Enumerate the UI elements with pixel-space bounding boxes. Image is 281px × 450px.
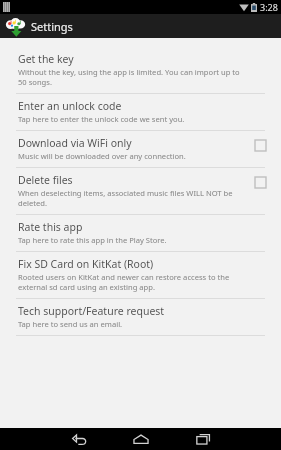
staticText: Tap here to enter the unlock code we sen… [18,114,185,124]
staticText: Rate this app [18,220,83,234]
staticText: Music will be downloaded over any connec… [18,151,186,161]
button[interactable]: Download via WiFi only [0,131,281,167]
staticText: Tap here to send us an email. [18,319,123,329]
button[interactable]: Home [110,428,172,450]
button[interactable]: Enter an unlock code [0,94,281,130]
button[interactable]: Get the key [0,47,281,93]
button[interactable]: Tech support/Feature request [0,299,281,335]
button[interactable]: Toggle Download via WiFi only [254,139,267,152]
button[interactable]: Toggle Delete files [254,176,267,189]
staticText: Without the key, using the app is limite… [18,67,246,87]
staticText: When deselecting items, associated music… [18,188,246,208]
staticText: Settings [31,19,73,34]
button[interactable]: Back [48,428,110,450]
staticText: Fix SD Card on KitKat (Root) [18,257,154,271]
button[interactable]: Delete files [0,168,281,214]
staticText: Delete files [18,173,73,187]
staticText: Enter an unlock code [18,99,122,113]
button[interactable]: Rate this app [0,215,281,251]
button[interactable]: Recent apps [172,428,234,450]
staticText: Get the key [18,52,74,66]
staticText: Tech support/Feature request [18,304,165,318]
staticText: Download via WiFi only [18,136,132,150]
button[interactable]: Fix SD Card on KitKat (Root) [0,252,281,298]
staticText: Tap here to rate this app in the Play St… [18,235,167,245]
staticText: Rooted users on KitKat and newer can res… [18,272,246,292]
staticText: 3:28 [260,1,278,13]
